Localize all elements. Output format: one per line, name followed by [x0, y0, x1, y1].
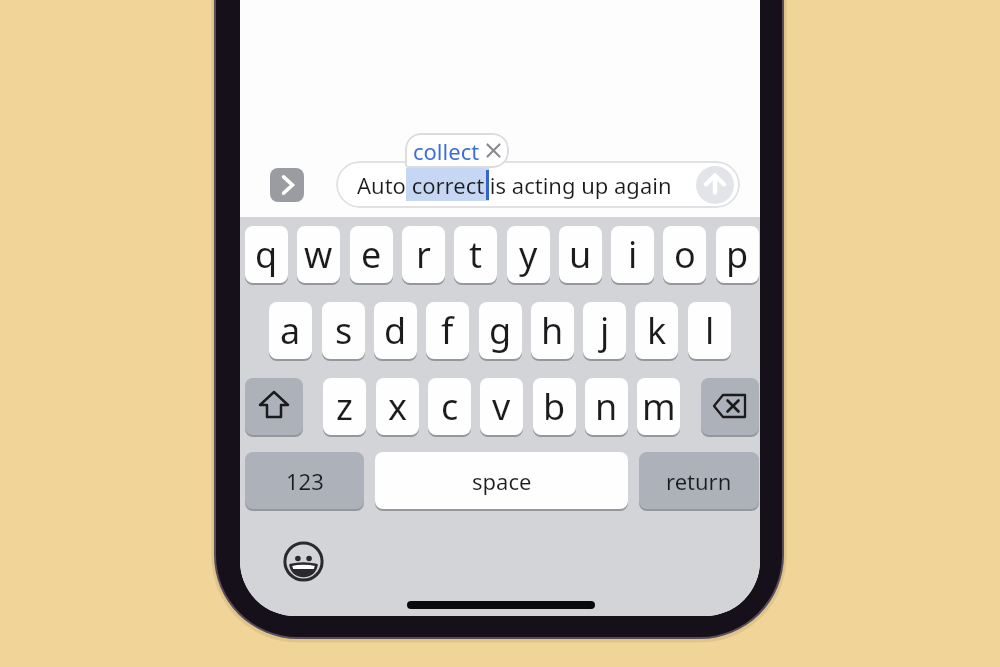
- button[interactable]: t: [454, 226, 497, 283]
- button[interactable]: x: [376, 378, 419, 435]
- button[interactable]: n: [585, 378, 628, 435]
- staticText: b: [543, 382, 566, 431]
- button[interactable]: f: [426, 302, 469, 359]
- button[interactable]: [701, 378, 759, 435]
- staticText: d: [384, 306, 407, 355]
- staticText: t: [469, 230, 482, 279]
- button[interactable]: g: [479, 302, 522, 359]
- button[interactable]: v: [480, 378, 523, 435]
- button[interactable]: [283, 541, 324, 582]
- button[interactable]: p: [716, 226, 759, 283]
- button[interactable]: r: [402, 226, 445, 283]
- button[interactable]: s: [322, 302, 365, 359]
- staticText: 123: [286, 466, 324, 496]
- button[interactable]: z: [323, 378, 366, 435]
- staticText: i: [628, 230, 638, 279]
- staticText: z: [336, 382, 353, 431]
- staticText: s: [335, 306, 353, 355]
- staticText: q: [255, 230, 278, 279]
- staticText: a: [280, 306, 301, 355]
- staticText: k: [647, 306, 667, 355]
- staticText: g: [489, 306, 512, 355]
- staticText: v: [492, 382, 511, 431]
- button[interactable]: o: [663, 226, 706, 283]
- button[interactable]: [696, 166, 734, 204]
- staticText: collect: [413, 136, 480, 166]
- staticText: o: [674, 230, 696, 279]
- button[interactable]: k: [635, 302, 678, 359]
- button[interactable]: space: [375, 452, 628, 509]
- staticText: r: [416, 230, 431, 279]
- button[interactable]: e: [350, 226, 393, 283]
- staticText: f: [441, 306, 454, 355]
- staticText: Auto correct is acting up again: [357, 170, 672, 200]
- button[interactable]: y: [507, 226, 550, 283]
- button[interactable]: m: [637, 378, 680, 435]
- button[interactable]: b: [533, 378, 576, 435]
- staticText: y: [519, 230, 538, 279]
- staticText: l: [705, 306, 715, 355]
- button[interactable]: j: [583, 302, 626, 359]
- button[interactable]: w: [297, 226, 340, 283]
- staticText: j: [600, 306, 610, 355]
- button[interactable]: [245, 378, 303, 435]
- staticText: h: [541, 306, 564, 355]
- staticText: x: [388, 382, 408, 431]
- button[interactable]: l: [688, 302, 731, 359]
- button[interactable]: return: [639, 452, 759, 509]
- staticText: c: [441, 382, 459, 431]
- button[interactable]: d: [374, 302, 417, 359]
- staticText: w: [304, 230, 333, 279]
- button[interactable]: 123: [245, 452, 364, 509]
- button[interactable]: Auto correct is acting up again: [336, 161, 740, 208]
- staticText: p: [726, 230, 749, 279]
- button[interactable]: i: [611, 226, 654, 283]
- button[interactable]: q: [245, 226, 288, 283]
- staticText: u: [569, 230, 592, 279]
- button[interactable]: c: [428, 378, 471, 435]
- staticText: space: [472, 466, 532, 496]
- button[interactable]: h: [531, 302, 574, 359]
- staticText: n: [595, 382, 618, 431]
- staticText: e: [361, 230, 382, 279]
- staticText: m: [642, 382, 676, 431]
- button[interactable]: [270, 168, 304, 202]
- button[interactable]: u: [559, 226, 602, 283]
- button[interactable]: a: [269, 302, 312, 359]
- button[interactable]: collect: [405, 133, 509, 168]
- staticText: return: [666, 466, 732, 496]
